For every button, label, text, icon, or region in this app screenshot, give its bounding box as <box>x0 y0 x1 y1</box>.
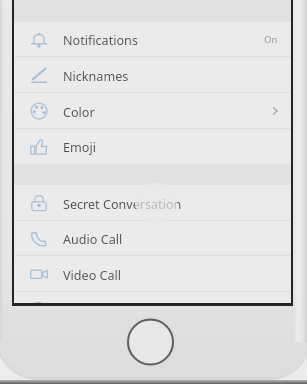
button[interactable]: Nicknames <box>14 57 291 93</box>
staticText: Video Call <box>63 267 122 284</box>
staticText: Secret Conversation <box>63 196 182 213</box>
staticText: On <box>264 33 278 46</box>
button[interactable]: Color <box>14 93 291 129</box>
button[interactable]: Emoji <box>14 129 291 164</box>
button[interactable]: Video Call <box>14 256 291 292</box>
staticText: Emoji <box>63 139 96 156</box>
staticText: Audio Call <box>63 231 123 248</box>
button[interactable]: Audio Call <box>14 221 291 256</box>
staticText: Notifications <box>63 32 138 49</box>
button[interactable]: Notifications <box>14 22 291 57</box>
staticText: Nicknames <box>63 68 129 85</box>
button[interactable]: Secret Conversation <box>14 185 291 221</box>
staticText: Color <box>63 104 95 121</box>
other: Open <box>270 106 280 116</box>
